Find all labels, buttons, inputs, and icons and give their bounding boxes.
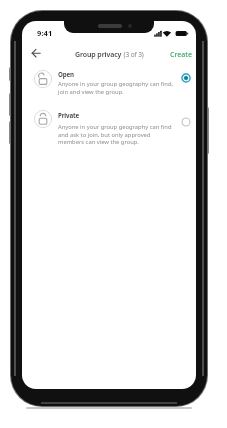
staticText: Group privacy: [75, 50, 122, 60]
staticText: Anyone in your group geography can find,: [58, 80, 174, 88]
staticText: Create: [170, 50, 192, 60]
staticText: (3 of 3): [122, 50, 144, 59]
staticText: Open: [58, 70, 74, 78]
staticText: Anyone in your group geography can find: [58, 123, 172, 131]
staticText: join and view the group.: [58, 88, 124, 96]
staticText: Private: [58, 111, 80, 119]
staticText: and ask to join, but only approved: [58, 131, 151, 139]
button[interactable]: Create: [166, 45, 194, 59]
button[interactable]: Open: [22, 67, 194, 100]
button[interactable]: [28, 47, 44, 61]
staticText: 9:41: [37, 28, 53, 38]
button[interactable]: Private: [22, 105, 194, 149]
staticText: members can view the group.: [58, 138, 139, 146]
